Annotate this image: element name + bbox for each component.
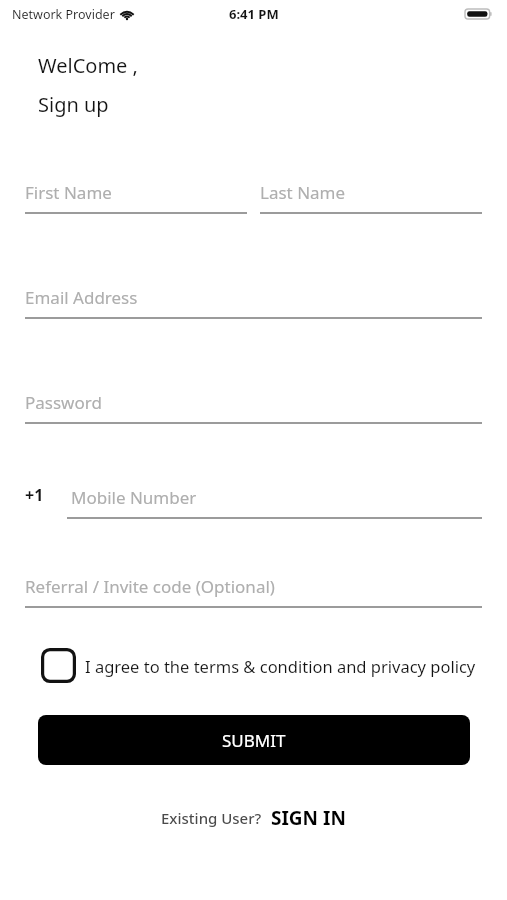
button[interactable]: Referral / Invite code (Optional)	[25, 575, 482, 608]
button[interactable]: First Name	[25, 181, 247, 214]
button[interactable]: I agree to the terms & condition and pri…	[25, 648, 482, 683]
staticText: Sign up	[38, 91, 109, 118]
staticText: Last Name	[260, 181, 346, 204]
button[interactable]: SIGN IN	[271, 805, 346, 831]
button[interactable]: Last Name	[260, 181, 482, 214]
button[interactable]: SUBMIT	[38, 715, 470, 765]
staticText: I agree to the terms & condition and pri…	[85, 655, 476, 677]
staticText: 6:41 PM	[229, 5, 279, 23]
staticText: +1	[25, 484, 67, 506]
staticText: Email Address	[25, 286, 138, 309]
staticText: First Name	[25, 181, 112, 204]
staticText: Existing User?	[161, 808, 262, 828]
other: Wi-Fi	[120, 9, 134, 20]
staticText: Referral / Invite code (Optional)	[25, 575, 275, 598]
staticText: Mobile Number	[71, 486, 197, 509]
button[interactable]: Email Address	[25, 286, 482, 319]
staticText: WelCome ,	[38, 52, 138, 79]
other: Battery	[465, 7, 493, 21]
button[interactable]: Mobile Number	[67, 486, 482, 519]
staticText: SIGN IN	[271, 805, 346, 831]
staticText: Password	[25, 391, 102, 414]
button[interactable]: Password	[25, 391, 482, 424]
staticText: Network Provider	[12, 6, 115, 23]
staticText: SUBMIT	[222, 729, 286, 752]
